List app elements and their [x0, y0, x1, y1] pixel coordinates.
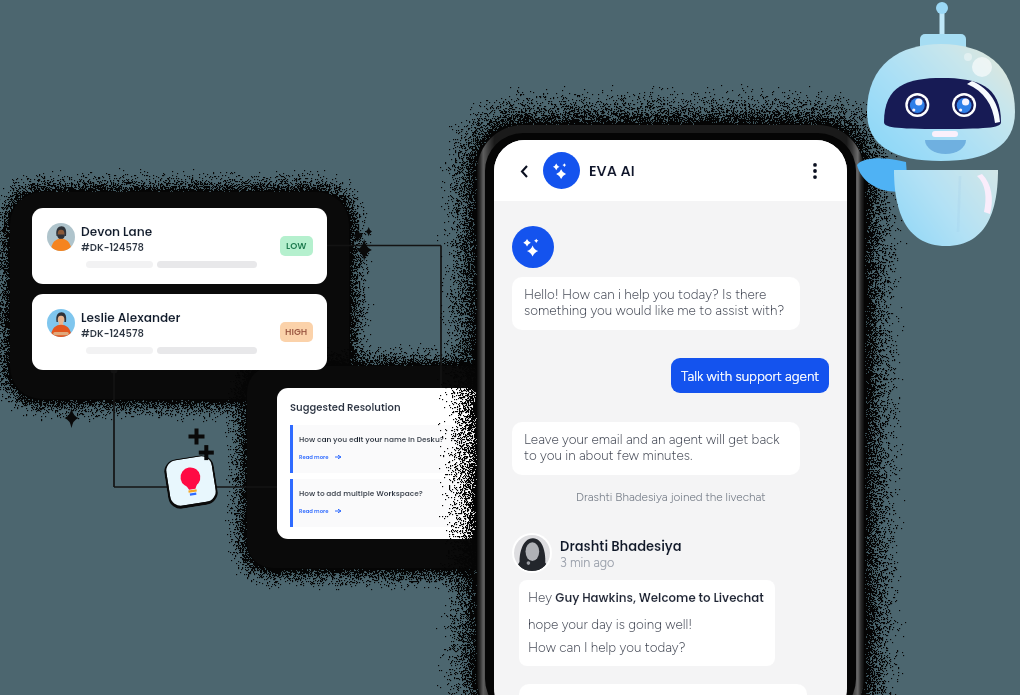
button[interactable]: More options — [803, 159, 827, 183]
staticText: Devon Lane — [81, 223, 153, 240]
staticText: How to add multiple Workspace? — [299, 488, 423, 498]
button[interactable]: Leslie Alexander — [32, 294, 327, 370]
staticText: Drashti Bhadesiya — [560, 537, 682, 555]
staticText: Suggested Resolution — [290, 400, 401, 414]
button[interactable]: How to add multiple Workspace? — [290, 479, 463, 527]
staticText: hope your day is going well! — [528, 616, 693, 632]
staticText: How can you edit your name in Desku? — [299, 434, 444, 444]
staticText: Talk with support agent — [681, 368, 820, 384]
staticText: Leave your email and an agent will get b… — [524, 431, 780, 463]
staticText: #DK-124578 — [81, 240, 144, 254]
button[interactable]: Idea — [165, 455, 217, 507]
button[interactable]: Back — [511, 158, 537, 184]
button[interactable]: Devon Lane — [32, 208, 327, 284]
staticText: LOW — [286, 240, 307, 253]
staticText: 3 min ago — [560, 555, 615, 570]
staticText: Leslie Alexander — [81, 309, 181, 326]
staticText: HIGH — [285, 326, 308, 339]
staticText: How can I help you today? — [528, 639, 686, 655]
button[interactable]: How can you edit your name in Desku? — [290, 425, 463, 473]
button[interactable]: Talk with support agent — [671, 358, 829, 393]
staticText: EVA AI — [589, 161, 635, 181]
staticText: Read more — [299, 507, 329, 514]
staticText: Hello! How can i help you today? Is ther… — [524, 286, 785, 318]
staticText: Hey Guy Hawkins, Welcome to Livechat — [528, 589, 764, 606]
staticText: Drashti Bhadesiya joined the livechat — [576, 490, 766, 504]
staticText: Read more — [299, 453, 329, 460]
staticText: #DK-124578 — [81, 326, 144, 340]
